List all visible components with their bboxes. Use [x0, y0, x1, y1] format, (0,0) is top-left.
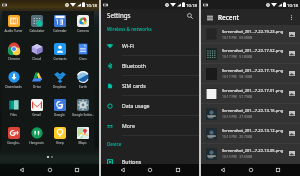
button[interactable]: Docs [71, 41, 94, 69]
button[interactable]: Recents [71, 164, 83, 176]
staticText: Hangouts [29, 141, 44, 145]
staticText: Keep [56, 141, 64, 145]
staticText: Contacts [53, 57, 67, 61]
staticText: Camera [77, 29, 89, 33]
staticText: 10:13 PM 25.70KB [222, 134, 253, 139]
staticText: Google [54, 113, 65, 117]
button[interactable]: Wi-Fi [101, 36, 199, 55]
staticText: 10:18 [186, 2, 197, 8]
button[interactable]: Recents [172, 164, 184, 176]
button[interactable]: Files [2, 97, 25, 125]
staticText: Wi-Fi [122, 42, 134, 49]
button[interactable]: Contacts [48, 41, 71, 69]
button[interactable]: Audio Tuner [2, 13, 25, 41]
button[interactable]: Drive [25, 69, 48, 97]
button[interactable]: Calendar [48, 13, 71, 41]
staticText: 10:13 PM 27.90KB [222, 114, 253, 119]
button[interactable]: Earth [71, 69, 94, 97]
button[interactable]: More [101, 116, 199, 135]
staticText: Audio Tuner [4, 29, 23, 33]
staticText: Calendar [53, 29, 67, 33]
staticText: Downloads [5, 85, 22, 89]
staticText: 10:17 PM 57.79KB [222, 94, 253, 99]
staticText: 10:18 [287, 2, 298, 8]
button[interactable]: Image type [289, 91, 295, 96]
button[interactable]: Camera [71, 13, 94, 41]
button[interactable]: Google [48, 97, 71, 125]
staticText: Screenshot_201...7-22-13-12.png [222, 128, 284, 133]
button[interactable]: More options [286, 12, 297, 23]
staticText: More [122, 122, 135, 129]
button[interactable]: Gmail [25, 97, 48, 125]
button[interactable]: Recents [272, 164, 284, 176]
button[interactable]: Data usage [101, 96, 199, 115]
button[interactable]: Back [217, 164, 229, 176]
button[interactable]: Image type [289, 32, 295, 37]
staticText: Buttons [122, 158, 142, 165]
button[interactable]: Home [245, 164, 257, 176]
staticText: 10:17 PM 58.10KB [222, 74, 253, 79]
button[interactable]: Dropbox [48, 69, 71, 97]
staticText: SIM cards [122, 82, 146, 89]
button[interactable]: Image type [289, 71, 295, 76]
button[interactable]: Home [44, 164, 56, 176]
button[interactable]: Home [144, 164, 156, 176]
staticText: Drive [33, 85, 41, 89]
staticText: 10:18 [86, 2, 97, 8]
button[interactable]: Screenshot_201...7-22-17-13.png [201, 64, 300, 83]
button[interactable]: Buttons [101, 152, 199, 171]
staticText: Dropbox [53, 85, 66, 89]
staticText: Wireless & networks [107, 26, 152, 32]
button[interactable]: Google Settin.. [71, 97, 94, 125]
staticText: Device [107, 141, 122, 147]
staticText: Google Settin.. [72, 113, 94, 117]
button[interactable]: Image type [289, 111, 295, 116]
staticText: Calculator [29, 29, 45, 33]
button[interactable]: Image type [289, 151, 295, 156]
staticText: Docs [79, 57, 87, 61]
staticText: Bluetooth [122, 62, 147, 69]
staticText: Screenshot_201...7-22-13-16.png [222, 108, 284, 113]
button[interactable]: Downloads [2, 69, 25, 97]
button[interactable]: Image type [289, 131, 295, 136]
button[interactable]: Hangouts [25, 125, 48, 152]
button[interactable]: Image type [289, 51, 295, 56]
staticText: Screenshot_201...7-22-17-52.png [222, 48, 284, 53]
button[interactable]: Maps [71, 125, 94, 152]
button[interactable]: Screenshot_201...7-22-19-23.png [201, 25, 300, 43]
staticText: Recent [218, 13, 239, 22]
staticText: Files [10, 113, 17, 117]
button[interactable]: Keep [48, 125, 71, 152]
staticText: Maps [78, 141, 87, 145]
staticText: Chrome [8, 57, 20, 61]
button[interactable]: Screenshot_201...7-22-13-12.png [201, 124, 300, 143]
staticText: 10:17 PM 51.80KB [222, 54, 253, 59]
button[interactable]: Back [16, 164, 28, 176]
staticText: 10:19 PM 69.08KB [222, 35, 253, 40]
button[interactable]: SIM cards [101, 76, 199, 95]
staticText: Screenshot_201...7-22-17-01.png [222, 88, 284, 93]
staticText: Settings [107, 11, 131, 19]
button[interactable]: Search [184, 10, 195, 21]
button[interactable]: Chrome [2, 41, 25, 69]
button[interactable]: Cloud [25, 41, 48, 69]
staticText: Cloud [32, 57, 41, 61]
staticText: Earth [79, 85, 87, 89]
button[interactable]: Screenshot_201...7-22-13-16.png [201, 104, 300, 123]
button[interactable]: Screenshot_201...7-22-17-01.png [201, 84, 300, 103]
staticText: Screenshot_201...7-22-13-05.png [222, 148, 284, 153]
staticText: Screenshot_201...7-22-19-23.png [222, 29, 284, 34]
staticText: Data usage [122, 102, 150, 109]
button[interactable]: Screenshot_201...7-22-17-52.png [201, 44, 300, 63]
staticText: Google+ [7, 141, 20, 145]
button[interactable]: Calculator [25, 13, 48, 41]
staticText: Screenshot_201...7-22-17-13.png [222, 68, 284, 73]
button[interactable]: Menu [204, 12, 215, 23]
button[interactable]: Bluetooth [101, 56, 199, 75]
button[interactable]: Back [117, 164, 129, 176]
button[interactable]: Screenshot_201...7-22-13-05.png [201, 144, 300, 163]
staticText: 10:13 PM 37.60KB [222, 154, 253, 159]
button[interactable]: Google+ [2, 125, 25, 152]
staticText: Gmail [32, 113, 41, 117]
